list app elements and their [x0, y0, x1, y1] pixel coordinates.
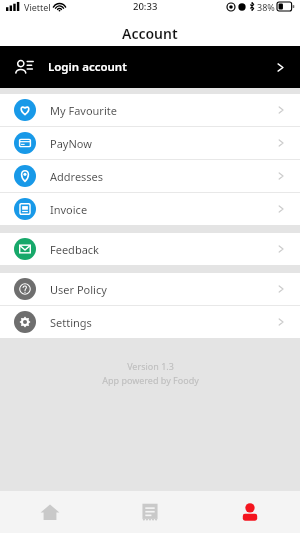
button[interactable]: User Policy [0, 273, 300, 305]
staticText: 38% [257, 1, 275, 13]
staticText: Version 1.3 [127, 360, 174, 372]
staticText: App powered by Foody [102, 374, 199, 386]
button[interactable]: Account [200, 491, 300, 533]
button[interactable]: Invoice [0, 193, 300, 225]
button[interactable]: Orders [100, 491, 200, 533]
staticText: Invoice [50, 202, 88, 217]
staticText: Settings [50, 315, 92, 330]
staticText: Login account [48, 59, 127, 75]
button[interactable]: Addresses [0, 160, 300, 192]
button[interactable]: Feedback [0, 233, 300, 265]
staticText: 20:33 [133, 0, 158, 13]
staticText: My Favourite [50, 103, 117, 118]
staticText: Addresses [50, 169, 104, 184]
button[interactable]: Login account [0, 46, 300, 88]
button[interactable]: Home [0, 491, 100, 533]
button[interactable]: Settings [0, 306, 300, 338]
staticText: PayNow [50, 136, 92, 151]
staticText: Feedback [50, 242, 99, 257]
staticText: User Policy [50, 282, 107, 297]
button[interactable]: PayNow [0, 127, 300, 159]
button[interactable]: My Favourite [0, 94, 300, 126]
staticText: Viettel [24, 1, 51, 13]
staticText: Account [122, 24, 178, 43]
